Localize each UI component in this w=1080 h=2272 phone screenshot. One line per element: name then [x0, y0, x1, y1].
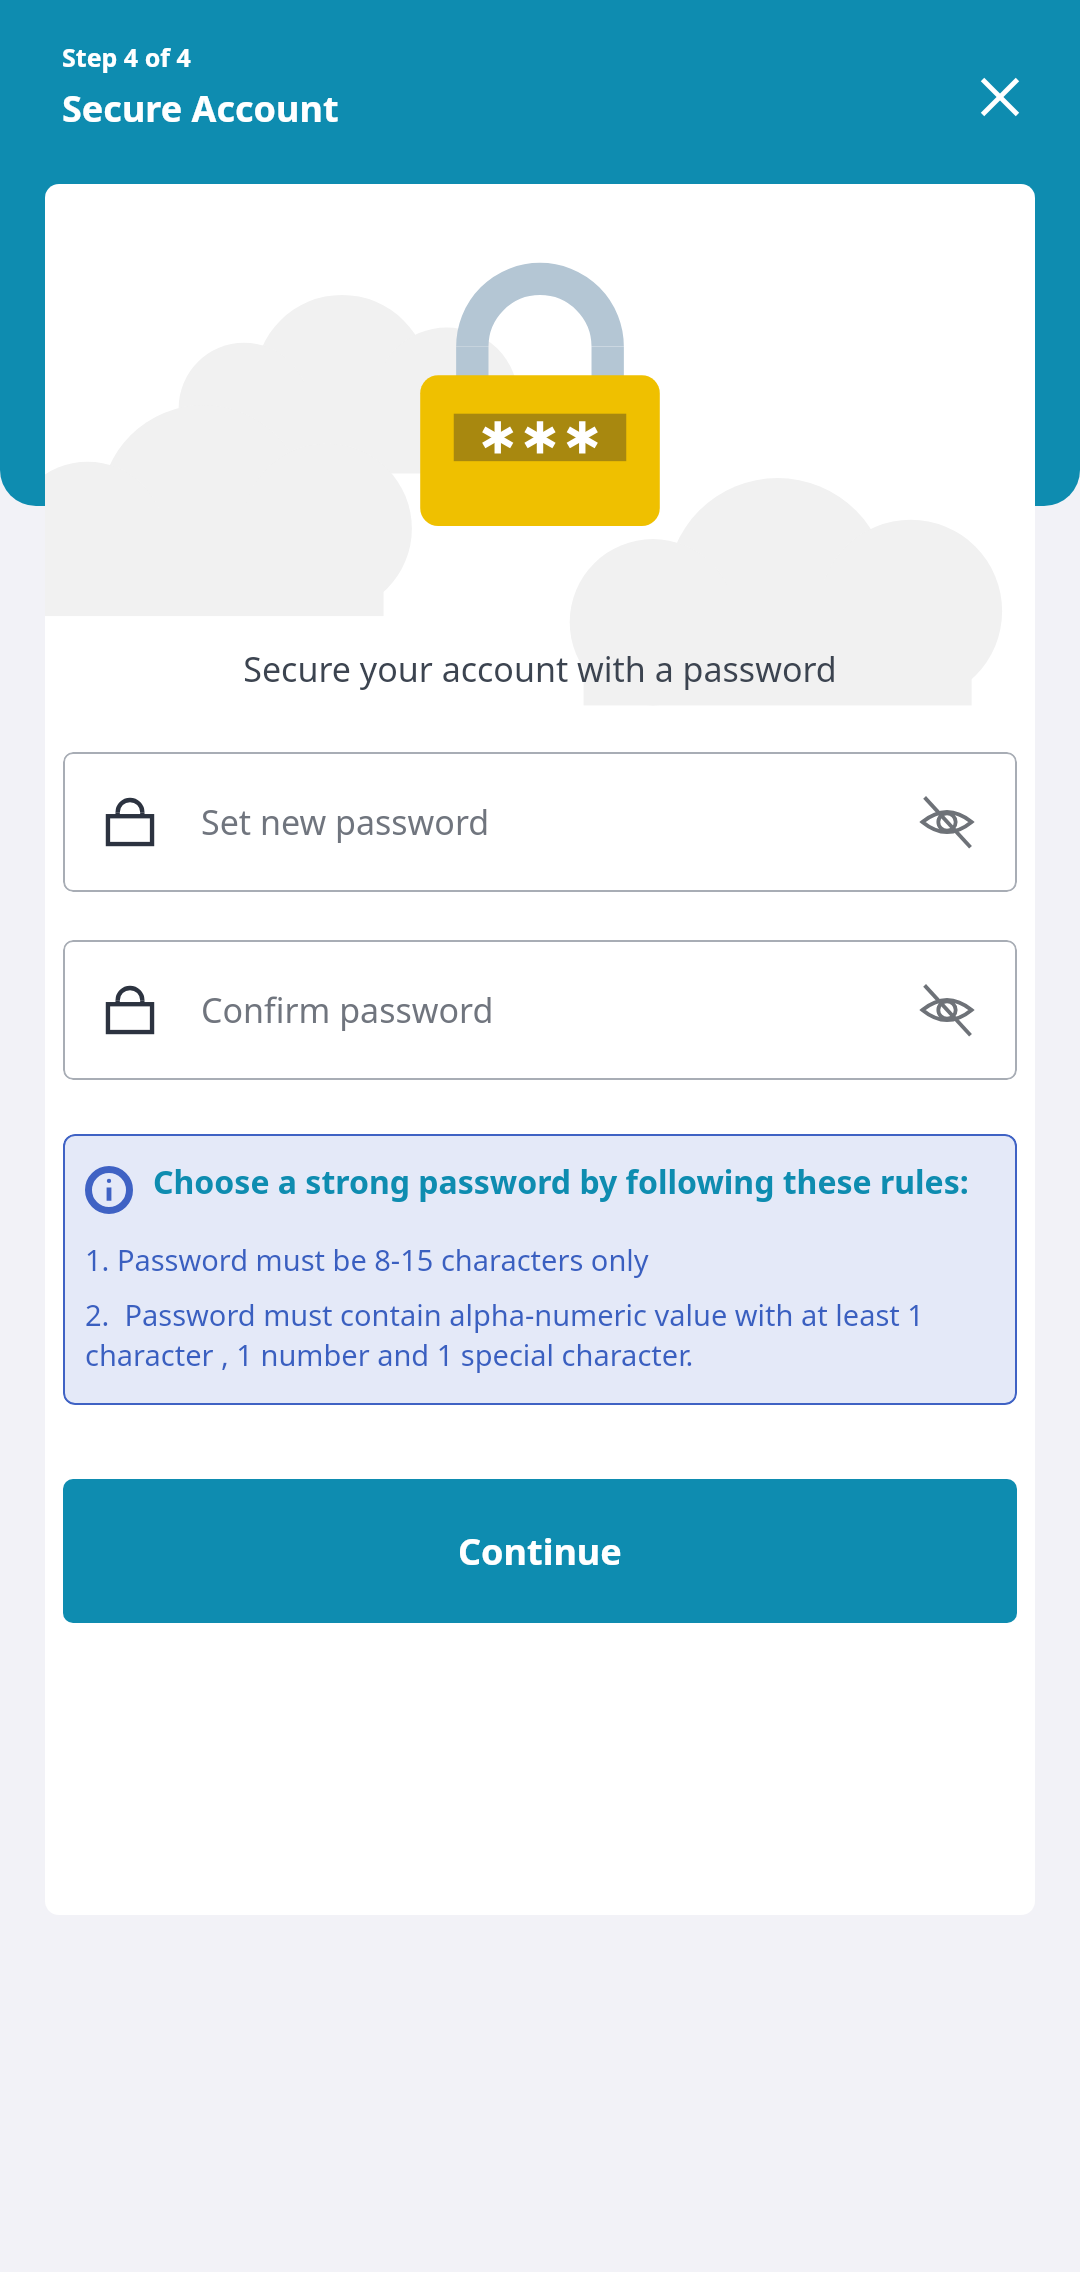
button[interactable]: Show password — [899, 774, 995, 870]
staticText: Secure Account — [62, 84, 339, 133]
staticText: Confirm password — [201, 987, 899, 1033]
staticText: Continue — [458, 1527, 622, 1576]
staticText: Secure your account with a password — [243, 646, 837, 692]
button[interactable]: Continue — [63, 1479, 1017, 1623]
staticText: Set new password — [201, 799, 899, 845]
button[interactable]: Set new password — [63, 752, 1017, 892]
button[interactable]: Show password — [899, 962, 995, 1058]
staticText: Step 4 of 4 — [62, 40, 191, 74]
button[interactable]: Confirm password — [63, 940, 1017, 1080]
button[interactable]: Close — [955, 52, 1045, 142]
staticText: 1. Password must be 8-15 characters only — [85, 1240, 649, 1279]
staticText: Choose a strong password by following th… — [153, 1160, 969, 1204]
staticText: 2. Password must contain alpha-numeric v… — [85, 1295, 995, 1375]
